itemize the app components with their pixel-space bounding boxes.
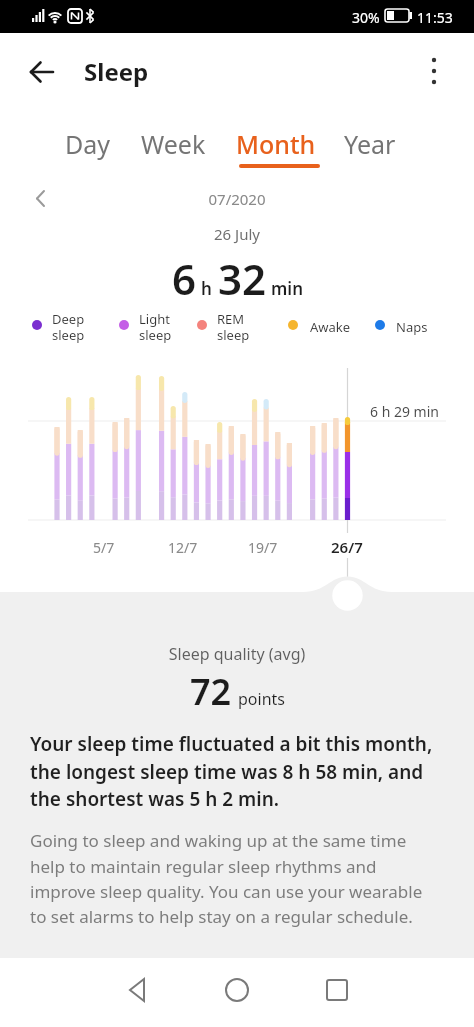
staticText: Going to sleep and waking up at the same… bbox=[30, 829, 423, 928]
button[interactable] bbox=[418, 52, 450, 84]
staticText: 07/2020 bbox=[0, 189, 474, 209]
button[interactable] bbox=[217, 970, 257, 1010]
staticText: Sleep bbox=[84, 55, 149, 88]
staticText: 19/7 bbox=[248, 538, 278, 557]
button[interactable] bbox=[117, 970, 157, 1010]
button[interactable] bbox=[28, 186, 54, 212]
button[interactable] bbox=[22, 52, 62, 92]
staticText: 5/7 bbox=[93, 538, 115, 557]
staticText: Month bbox=[236, 127, 316, 161]
staticText: 11:53 bbox=[417, 8, 453, 27]
button[interactable]: Year bbox=[344, 127, 396, 161]
staticText: 6 h 29 min bbox=[370, 402, 439, 421]
button[interactable]: Day bbox=[65, 127, 111, 161]
staticText: 72 bbox=[190, 667, 232, 716]
staticText: Your sleep time fluctuated a bit this mo… bbox=[30, 731, 433, 811]
button[interactable] bbox=[317, 970, 357, 1010]
staticText: 26/7 bbox=[331, 537, 363, 557]
staticText: 32 bbox=[218, 250, 267, 307]
staticText: points bbox=[238, 688, 285, 710]
staticText: Deep sleep bbox=[52, 310, 85, 343]
staticText: REM sleep bbox=[217, 310, 250, 343]
staticText: 26 July bbox=[0, 224, 474, 244]
button[interactable]: Week bbox=[141, 127, 206, 161]
staticText: 6 bbox=[172, 250, 197, 307]
staticText: Awake bbox=[310, 318, 351, 336]
staticText: Sleep quality (avg) bbox=[0, 643, 474, 665]
staticText: Week bbox=[141, 127, 206, 161]
staticText: Light sleep bbox=[139, 310, 172, 343]
staticText: h bbox=[201, 277, 212, 300]
staticText: 30% bbox=[352, 8, 380, 27]
staticText: Naps bbox=[396, 318, 428, 336]
staticText: Day bbox=[65, 127, 111, 161]
staticText: Year bbox=[344, 127, 396, 161]
staticText: 12/7 bbox=[168, 538, 198, 557]
staticText: min bbox=[271, 277, 303, 300]
button[interactable]: Month bbox=[236, 127, 316, 161]
